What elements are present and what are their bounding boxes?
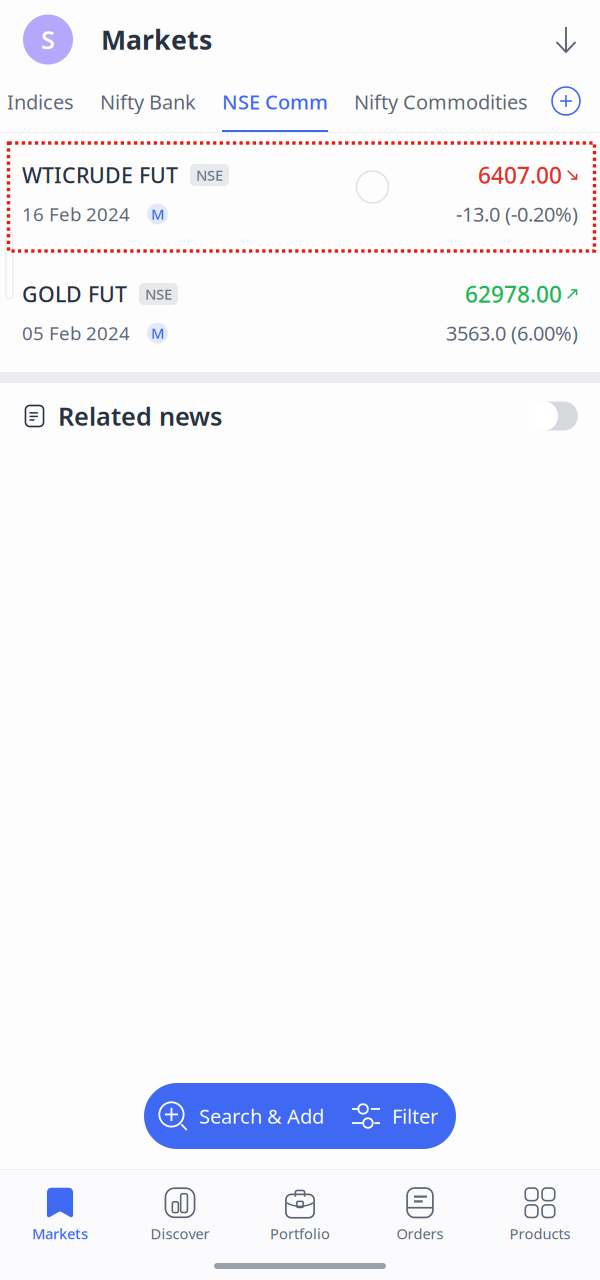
staticText: Markets: [32, 1224, 88, 1243]
staticText: Search & Add: [199, 1103, 324, 1129]
staticText: M: [151, 323, 164, 343]
button[interactable]: Indices: [0, 79, 87, 133]
button[interactable]: GOLD FUT: [0, 252, 600, 371]
staticText: Related news: [58, 399, 222, 433]
button[interactable]: Nifty Bank: [87, 79, 209, 133]
staticText: Filter: [392, 1103, 438, 1129]
button[interactable]: Profile: [23, 14, 73, 64]
button[interactable]: WTICRUDE FUT: [0, 133, 600, 252]
staticText: -13.0 (-0.20%): [456, 201, 578, 227]
button[interactable]: Search & Add: [144, 1083, 456, 1149]
staticText: S: [41, 23, 55, 56]
staticText: M: [151, 204, 164, 224]
staticText: Discover: [150, 1224, 209, 1243]
staticText: 3563.0 (6.00%): [446, 320, 578, 346]
button[interactable]: Add watchlist: [552, 87, 580, 125]
staticText: Indices: [7, 88, 74, 115]
button[interactable]: NSE Comm: [209, 79, 341, 133]
button[interactable]: Download: [548, 21, 584, 57]
button[interactable]: Portfolio: [240, 1171, 360, 1251]
staticText: Markets: [101, 22, 212, 57]
staticText: 62978.00: [465, 279, 562, 309]
staticText: NSE: [196, 165, 223, 185]
staticText: GOLD FUT: [22, 280, 127, 308]
button[interactable]: Nifty Commodities: [341, 79, 541, 133]
staticText: Orders: [396, 1224, 443, 1243]
button[interactable]: Markets: [0, 1171, 120, 1251]
staticText: 05 Feb 2024: [22, 321, 130, 345]
staticText: WTICRUDE FUT: [22, 161, 178, 189]
button[interactable]: Discover: [120, 1171, 240, 1251]
staticText: 16 Feb 2024: [22, 202, 130, 226]
staticText: Nifty Commodities: [354, 88, 528, 115]
staticText: Products: [509, 1224, 570, 1243]
staticText: NSE: [145, 284, 172, 304]
staticText: Nifty Bank: [100, 88, 196, 115]
staticText: Portfolio: [270, 1224, 330, 1243]
staticText: NSE Comm: [222, 88, 328, 115]
button[interactable]: Toggle related news: [528, 401, 578, 431]
button[interactable]: Orders: [360, 1171, 480, 1251]
staticText: 6407.00: [478, 160, 562, 190]
button[interactable]: Products: [480, 1171, 600, 1251]
